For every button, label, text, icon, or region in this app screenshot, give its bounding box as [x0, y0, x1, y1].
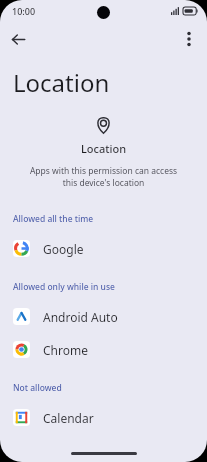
staticText: Calendar [43, 410, 94, 426]
staticText: Not allowed [13, 382, 62, 394]
button[interactable]: Android Auto [0, 300, 207, 333]
staticText: Android Auto [43, 309, 118, 325]
button[interactable]: Back [4, 25, 32, 53]
button[interactable]: More options [175, 25, 203, 53]
staticText: Location [81, 141, 127, 156]
staticText: Chrome [43, 342, 88, 358]
button[interactable]: Google [0, 232, 207, 265]
button[interactable]: Calendar [0, 401, 207, 434]
staticText: Google [43, 241, 84, 257]
staticText: Apps with this permission can access thi… [24, 165, 183, 189]
staticText: 10:00 [12, 5, 36, 17]
staticText: Allowed all the time [13, 213, 94, 225]
button[interactable]: Chrome [0, 333, 207, 366]
staticText: Location [13, 66, 110, 99]
staticText: Allowed only while in use [13, 281, 115, 293]
